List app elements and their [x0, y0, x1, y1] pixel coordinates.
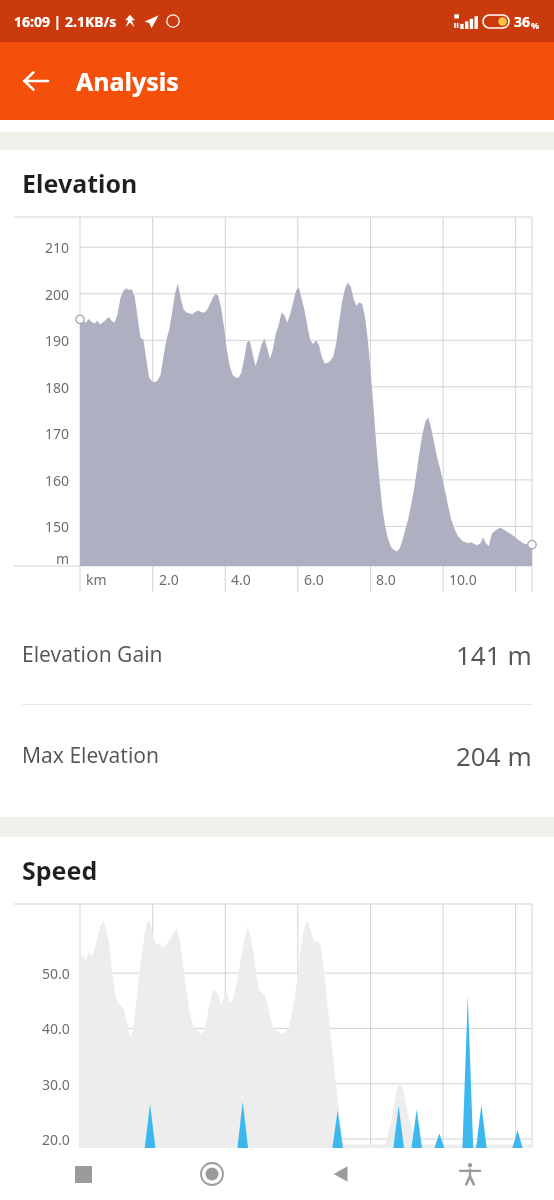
- staticText: Elevation: [22, 166, 138, 200]
- staticText: 170: [45, 424, 70, 443]
- staticText: 30.0: [42, 1075, 70, 1094]
- button[interactable]: Back: [315, 1148, 367, 1200]
- staticText: 10.0: [449, 570, 477, 589]
- staticText: 200: [45, 285, 70, 304]
- button[interactable]: Elevation Gain: [0, 604, 554, 704]
- button[interactable]: Max Elevation: [0, 705, 554, 805]
- staticText: 204 m: [456, 738, 532, 773]
- button[interactable]: Accessibility: [444, 1148, 496, 1200]
- button[interactable]: Recents: [57, 1148, 109, 1200]
- staticText: 180: [45, 378, 70, 397]
- staticText: 2.0: [159, 570, 179, 589]
- staticText: Speed: [22, 853, 98, 887]
- staticText: Max Elevation: [22, 741, 160, 770]
- staticText: 210: [45, 238, 70, 257]
- staticText: 36: [514, 12, 531, 31]
- staticText: %: [531, 19, 540, 31]
- staticText: 50.0: [42, 964, 70, 983]
- staticText: m: [56, 549, 70, 568]
- staticText: 190: [45, 331, 70, 350]
- staticText: km: [86, 570, 107, 589]
- staticText: 16:09 | 2.1KB/s: [14, 12, 117, 31]
- staticText: 4.0: [231, 570, 251, 589]
- staticText: Elevation Gain: [22, 640, 163, 669]
- staticText: Analysis: [76, 64, 179, 98]
- staticText: 141 m: [456, 637, 532, 672]
- staticText: 150: [45, 517, 70, 536]
- staticText: 8.0: [376, 570, 396, 589]
- staticText: 160: [45, 471, 70, 490]
- staticText: 40.0: [42, 1019, 70, 1038]
- staticText: 6.0: [304, 570, 324, 589]
- staticText: 20.0: [42, 1130, 70, 1149]
- button[interactable]: Home: [186, 1148, 238, 1200]
- button[interactable]: Back: [8, 53, 64, 109]
